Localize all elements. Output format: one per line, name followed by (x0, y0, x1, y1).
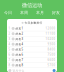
staticText: 好友5 (16, 48, 24, 51)
staticText: 微信运动 (22, 2, 42, 9)
staticText: 本周 (20, 10, 28, 15)
staticText: 3 (8, 37, 10, 41)
staticText: 5700 (48, 63, 56, 67)
staticText: 好友3 (16, 37, 24, 41)
button[interactable]: 本月 (32, 10, 48, 15)
staticText: 6 (8, 53, 10, 56)
staticText: 好友 (52, 10, 60, 15)
button[interactable]: 4 (7, 42, 57, 47)
button[interactable]: 微信运动 (22, 0, 42, 9)
button[interactable]: 3 (7, 36, 57, 42)
staticText: 8400 (48, 48, 56, 51)
staticText: 好友7 (16, 58, 24, 62)
staticText: 好友2 (16, 32, 24, 35)
button[interactable]: 1 (7, 26, 57, 31)
staticText: 好友1 (16, 27, 24, 30)
staticText: 4 (8, 42, 10, 46)
staticText: 今日 (4, 10, 12, 15)
staticText: 今日步数排行 (24, 21, 42, 24)
staticText: 6600 (48, 58, 56, 62)
staticText: 1 (8, 27, 10, 30)
button[interactable]: 5 (7, 47, 57, 52)
staticText: 好友4 (16, 42, 24, 46)
staticText: 2 (8, 32, 10, 35)
button[interactable]: 7 (7, 57, 57, 63)
button[interactable]: 2 (7, 31, 57, 36)
button[interactable]: 本周 (16, 10, 32, 15)
staticText: 11100 (46, 32, 56, 35)
staticText: 12000 (46, 27, 56, 30)
button[interactable]: 今日 (0, 10, 16, 15)
button[interactable]: 好友 (48, 10, 64, 15)
staticText: 好友6 (16, 53, 24, 56)
button[interactable]: 6 (7, 52, 57, 57)
staticText: 本月 (36, 10, 44, 15)
staticText: 说点什么 (12, 69, 24, 72)
staticText: 7500 (48, 53, 56, 56)
staticText: 7 (8, 58, 10, 62)
staticText: 10200 (46, 37, 56, 41)
staticText: 5 (8, 48, 10, 51)
staticText: 好友8 (16, 63, 24, 67)
staticText: 8 (8, 63, 10, 67)
button[interactable]: 8 (7, 63, 57, 68)
staticText: 9300 (48, 42, 56, 46)
